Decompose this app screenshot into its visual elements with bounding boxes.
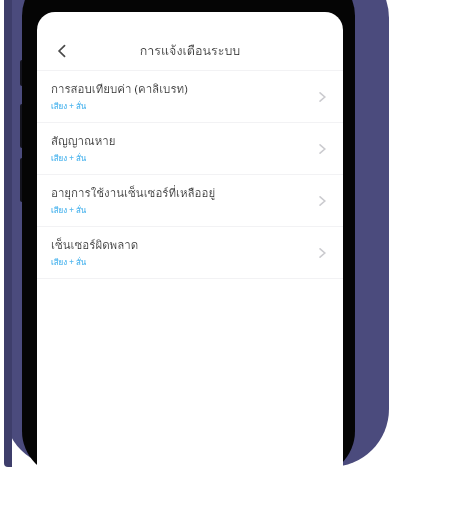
button[interactable]: การสอบเทียบค่า (คาลิเบรท) [37, 71, 343, 122]
staticText: เสียง + สั่น [51, 204, 87, 217]
button[interactable]: สัญญาณหาย [37, 123, 343, 174]
staticText: เสียง + สั่น [51, 152, 87, 165]
staticText: เสียง + สั่น [51, 100, 87, 113]
staticText: อายุการใช้งานเซ็นเซอร์ที่เหลืออยู่ [51, 184, 216, 202]
button[interactable]: เซ็นเซอร์ผิดพลาด [37, 227, 343, 278]
staticText: เซ็นเซอร์ผิดพลาด [51, 236, 139, 254]
staticText: เสียง + สั่น [51, 256, 87, 269]
staticText: การสอบเทียบค่า (คาลิเบรท) [51, 80, 188, 98]
staticText: สัญญาณหาย [51, 132, 116, 150]
button[interactable]: Back [43, 32, 81, 70]
staticText: การแจ้งเตือนระบบ [37, 41, 343, 61]
button[interactable]: อายุการใช้งานเซ็นเซอร์ที่เหลืออยู่ [37, 175, 343, 226]
